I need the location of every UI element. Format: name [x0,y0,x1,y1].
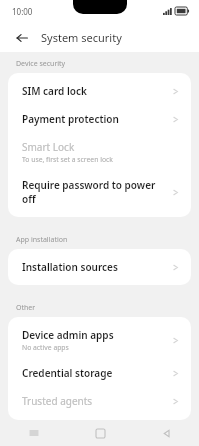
staticText: Credential storage [22,366,113,380]
staticText: 10:00 [12,6,33,17]
staticText: Installation sources [22,260,118,274]
button[interactable]: Smart Lock [8,133,191,171]
staticText: Other [16,303,199,313]
staticText: Device admin apps [22,328,114,342]
button[interactable]: Recents [0,420,67,446]
button[interactable]: Device admin apps [8,321,191,359]
staticText: App installation [16,235,199,245]
staticText: Trusted agents [22,394,93,408]
button[interactable]: Back [13,29,30,46]
staticText: To use, first set a screen lock [22,155,113,164]
button[interactable]: Credential storage [8,359,191,387]
button[interactable]: Back [133,420,199,446]
button[interactable]: Trusted agents [8,387,191,416]
staticText: System security [41,30,122,45]
staticText: Smart Lock [22,140,75,154]
staticText: Device security [16,59,199,69]
button[interactable]: Installation sources [8,253,191,281]
staticText: No active apps [22,343,69,352]
staticText: Payment protection [22,112,119,126]
button[interactable]: SIM card lock [8,77,191,105]
staticText: Require password to power off [22,178,171,206]
staticText: SIM card lock [22,84,87,98]
button[interactable]: Payment protection [8,105,191,133]
button[interactable]: Require password to power off [8,171,191,213]
button[interactable]: Home [67,420,133,446]
